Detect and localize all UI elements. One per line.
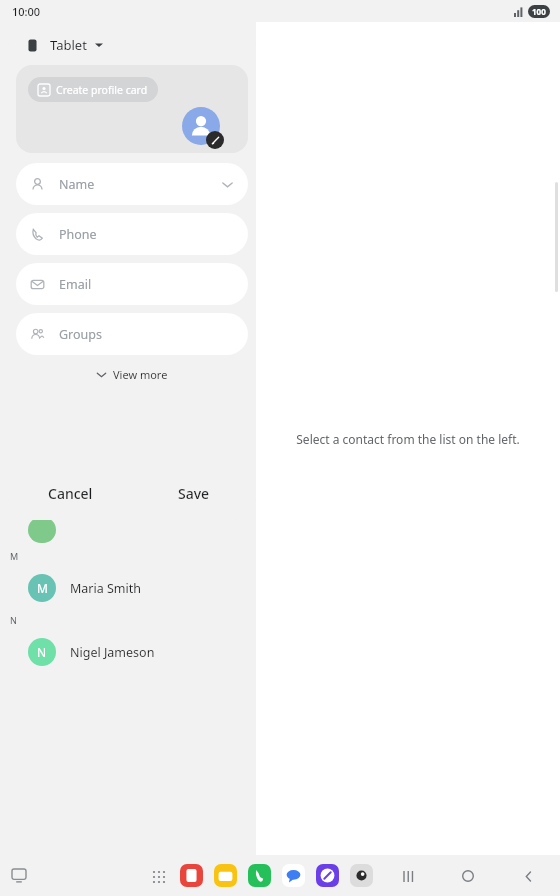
button[interactable]: View more bbox=[88, 363, 176, 386]
button[interactable]: M bbox=[0, 569, 255, 607]
staticText: Email bbox=[59, 276, 92, 293]
button[interactable]: Recent apps bbox=[6, 863, 32, 889]
button[interactable]: Name bbox=[16, 163, 248, 205]
button[interactable]: Email bbox=[16, 263, 248, 305]
staticText: Select a contact from the list on the le… bbox=[296, 431, 520, 447]
button[interactable]: Create profile card bbox=[28, 77, 158, 102]
button[interactable]: Groups bbox=[16, 313, 248, 355]
button[interactable]: App bbox=[214, 864, 237, 887]
button[interactable]: Back bbox=[514, 862, 542, 890]
staticText: M bbox=[10, 550, 19, 562]
button[interactable]: App bbox=[180, 864, 203, 887]
staticText: M bbox=[37, 580, 48, 596]
button[interactable]: Phone bbox=[16, 213, 248, 255]
staticText: Groups bbox=[59, 326, 102, 343]
button[interactable]: N bbox=[0, 633, 255, 671]
button[interactable]: Cancel bbox=[8, 466, 132, 520]
staticText: Save bbox=[178, 484, 210, 503]
staticText: Cancel bbox=[48, 484, 93, 503]
staticText: Maria Smith bbox=[70, 580, 142, 597]
button[interactable]: Tablet bbox=[8, 25, 256, 65]
button[interactable]: Profile photo bbox=[182, 107, 220, 145]
staticText: 100 bbox=[532, 6, 546, 17]
staticText: Phone bbox=[59, 226, 97, 243]
staticText: Create profile card bbox=[56, 83, 148, 97]
button[interactable]: App bbox=[350, 864, 373, 887]
staticText: View more bbox=[113, 367, 168, 382]
button[interactable]: Home bbox=[454, 862, 482, 890]
button[interactable]: Save bbox=[132, 466, 256, 520]
staticText: Name bbox=[59, 176, 95, 193]
staticText: N bbox=[10, 614, 17, 626]
button[interactable]: App bbox=[316, 864, 339, 887]
staticText: Nigel Jameson bbox=[70, 644, 155, 661]
button[interactable]: App bbox=[248, 864, 271, 887]
button[interactable]: Recents bbox=[394, 862, 422, 890]
button[interactable]: App bbox=[282, 864, 305, 887]
button[interactable]: Edit photo bbox=[206, 131, 224, 149]
button[interactable] bbox=[0, 517, 255, 543]
staticText: Tablet bbox=[50, 36, 87, 54]
staticText: N bbox=[37, 644, 47, 660]
staticText: 10:00 bbox=[12, 4, 41, 19]
button[interactable]: All apps bbox=[147, 865, 169, 887]
